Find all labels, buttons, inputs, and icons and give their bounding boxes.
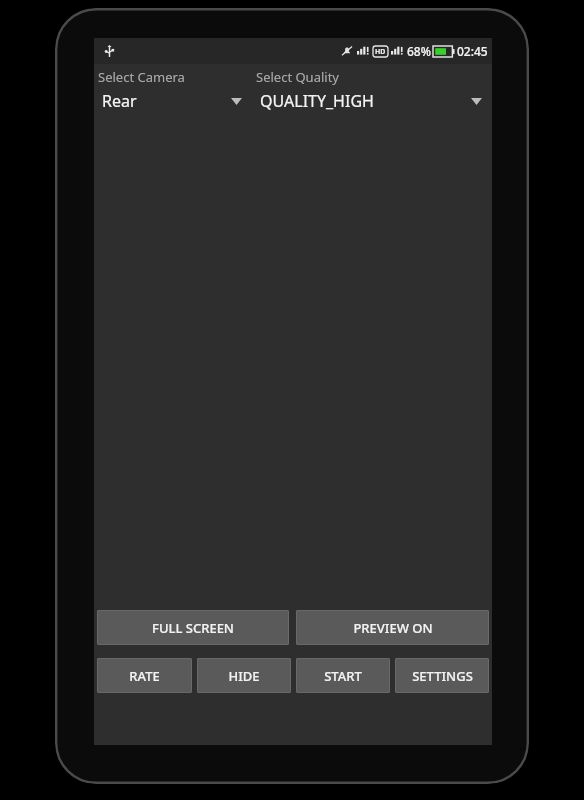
staticText: 68% [407, 43, 431, 59]
staticText: START [324, 667, 362, 685]
button[interactable]: SETTINGS [395, 658, 489, 693]
staticText: 02:45 [457, 43, 488, 59]
button[interactable]: Rear [94, 86, 252, 116]
button[interactable]: PREVIEW ON [296, 610, 489, 645]
staticText: SETTINGS [412, 667, 473, 685]
staticText: Rear [102, 90, 231, 112]
button[interactable]: HIDE [197, 658, 291, 693]
staticText: RATE [129, 667, 160, 685]
staticText: FULL SCREEN [152, 619, 234, 637]
staticText: HIDE [228, 667, 260, 685]
button[interactable]: RATE [97, 658, 192, 693]
button[interactable]: QUALITY_HIGH [252, 86, 492, 116]
button[interactable]: START [296, 658, 390, 693]
staticText: Select Camera [98, 68, 185, 86]
staticText: HD [375, 47, 386, 57]
staticText: QUALITY_HIGH [260, 90, 471, 112]
button[interactable]: FULL SCREEN [97, 610, 289, 645]
staticText: Select Quality [256, 68, 339, 86]
staticText: PREVIEW ON [353, 619, 433, 637]
